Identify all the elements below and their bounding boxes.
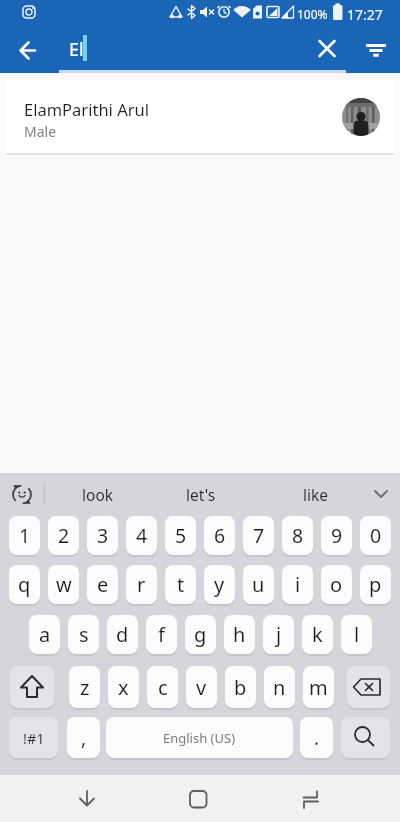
staticText: l xyxy=(354,621,360,648)
button[interactable]: look xyxy=(60,473,135,516)
button[interactable]: !#1 xyxy=(9,717,58,758)
button[interactable]: 5 xyxy=(165,516,196,555)
button[interactable] xyxy=(174,774,222,822)
button[interactable]: t xyxy=(165,565,196,604)
staticText: 100% xyxy=(297,6,328,22)
button[interactable] xyxy=(355,28,397,70)
staticText: z xyxy=(80,674,90,701)
button[interactable]: El xyxy=(56,28,348,72)
staticText: 7 xyxy=(253,522,265,549)
staticText: p xyxy=(369,571,382,598)
button[interactable]: 9 xyxy=(321,516,352,555)
button[interactable]: ElamParithi Arul xyxy=(5,80,395,153)
staticText: 1 xyxy=(19,522,31,549)
button[interactable] xyxy=(347,666,390,708)
button[interactable]: s xyxy=(68,615,99,654)
staticText: h xyxy=(233,621,246,648)
button[interactable]: let's xyxy=(163,473,238,516)
staticText: 17:27 xyxy=(347,5,383,24)
button[interactable]: 7 xyxy=(243,516,274,555)
staticText: 6 xyxy=(214,522,226,549)
staticText: m xyxy=(309,674,328,701)
button[interactable]: like xyxy=(278,473,353,516)
button[interactable]: 3 xyxy=(87,516,118,555)
staticText: 5 xyxy=(175,522,187,549)
button[interactable] xyxy=(10,666,54,708)
staticText: Male xyxy=(24,122,57,141)
button[interactable]: g xyxy=(185,615,216,654)
button[interactable]: 6 xyxy=(204,516,235,555)
staticText: !#1 xyxy=(23,728,45,748)
staticText: . xyxy=(314,725,320,751)
button[interactable]: x xyxy=(108,666,139,708)
button[interactable]: l xyxy=(341,615,372,654)
staticText: c xyxy=(158,674,168,701)
button[interactable]: d xyxy=(107,615,138,654)
staticText: 0 xyxy=(370,522,382,549)
staticText: x xyxy=(118,674,129,701)
button[interactable]: 1 xyxy=(9,516,40,555)
button[interactable]: English (US) xyxy=(106,717,293,758)
staticText: r xyxy=(137,571,146,598)
button[interactable]: b xyxy=(225,666,256,708)
staticText: like xyxy=(303,484,329,505)
button[interactable]: i xyxy=(282,565,313,604)
staticText: e xyxy=(97,571,109,598)
staticText: d xyxy=(116,621,129,648)
button[interactable]: h xyxy=(224,615,255,654)
button[interactable]: c xyxy=(147,666,178,708)
button[interactable]: v xyxy=(186,666,217,708)
staticText: , xyxy=(81,725,87,751)
button[interactable]: 4 xyxy=(126,516,157,555)
staticText: f xyxy=(158,621,165,648)
staticText: q xyxy=(18,571,31,598)
staticText: n xyxy=(273,674,286,701)
button[interactable]: n xyxy=(264,666,295,708)
button[interactable]: m xyxy=(303,666,334,708)
staticText: t xyxy=(177,571,185,598)
staticText: v xyxy=(196,674,207,701)
button[interactable] xyxy=(306,28,348,70)
button[interactable]: r xyxy=(126,565,157,604)
staticText: English (US) xyxy=(163,729,236,747)
staticText: 8 xyxy=(292,522,304,549)
button[interactable]: q xyxy=(9,565,40,604)
button[interactable]: 8 xyxy=(282,516,313,555)
button[interactable] xyxy=(63,774,111,822)
button[interactable]: u xyxy=(243,565,274,604)
staticText: k xyxy=(312,621,323,648)
staticText: s xyxy=(79,621,89,648)
button[interactable] xyxy=(286,774,334,822)
button[interactable] xyxy=(358,473,400,516)
staticText: 9 xyxy=(331,522,343,549)
button[interactable]: j xyxy=(263,615,294,654)
button[interactable]: a xyxy=(29,615,60,654)
staticText: y xyxy=(214,571,225,598)
button[interactable]: y xyxy=(204,565,235,604)
staticText: i xyxy=(295,571,301,598)
button[interactable]: , xyxy=(67,717,100,758)
staticText: ElamParithi Arul xyxy=(24,98,149,120)
staticText: g xyxy=(194,621,207,648)
button[interactable]: . xyxy=(300,717,333,758)
button[interactable]: o xyxy=(321,565,352,604)
button[interactable]: w xyxy=(48,565,79,604)
staticText: 3 xyxy=(97,522,109,549)
staticText: u xyxy=(252,571,265,598)
staticText: b xyxy=(234,674,247,701)
staticText: w xyxy=(56,571,72,598)
button[interactable] xyxy=(341,717,390,758)
button[interactable]: 0 xyxy=(360,516,391,555)
staticText: o xyxy=(330,571,343,598)
button[interactable]: p xyxy=(360,565,391,604)
staticText: 2 xyxy=(58,522,70,549)
button[interactable] xyxy=(6,27,48,69)
button[interactable]: z xyxy=(69,666,100,708)
staticText: El xyxy=(69,37,84,62)
staticText: j xyxy=(276,621,282,648)
button[interactable] xyxy=(0,473,44,516)
button[interactable]: k xyxy=(302,615,333,654)
button[interactable]: 2 xyxy=(48,516,79,555)
button[interactable]: e xyxy=(87,565,118,604)
button[interactable]: f xyxy=(146,615,177,654)
